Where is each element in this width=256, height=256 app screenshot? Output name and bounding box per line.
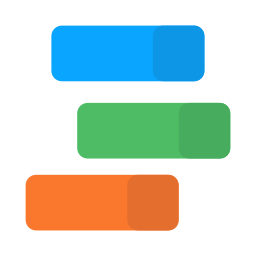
button[interactable]: First task	[51, 26, 204, 81]
button[interactable]: Third task	[26, 175, 179, 230]
button[interactable]: Second task	[77, 103, 230, 159]
